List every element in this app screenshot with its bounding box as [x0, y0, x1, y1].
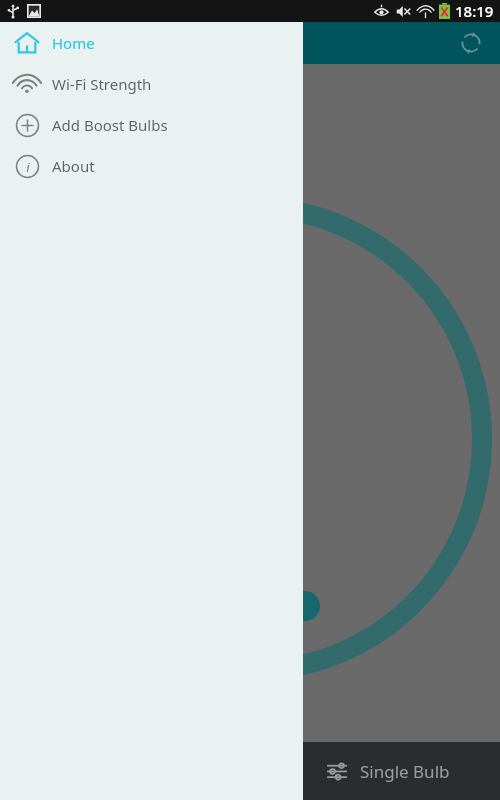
button[interactable]: Add Boost Bulbs	[0, 104, 303, 145]
button[interactable]: Wi-Fi Strength	[0, 63, 303, 104]
button[interactable]: Home	[0, 22, 303, 63]
staticText: Single Bulb	[360, 760, 450, 783]
button[interactable]: Refresh	[450, 22, 492, 64]
button[interactable]: i	[0, 145, 303, 186]
staticText: i	[26, 158, 30, 176]
staticText: About	[52, 156, 95, 176]
staticText: Wi-Fi Strength	[52, 74, 152, 94]
staticText: Home	[52, 33, 95, 53]
staticText: Add Boost Bulbs	[52, 115, 168, 135]
button[interactable]: Single Bulb	[0, 742, 500, 800]
button[interactable]: Boost	[252, 591, 320, 621]
staticText: 18:19	[455, 1, 494, 21]
staticText: Boost	[268, 597, 304, 615]
